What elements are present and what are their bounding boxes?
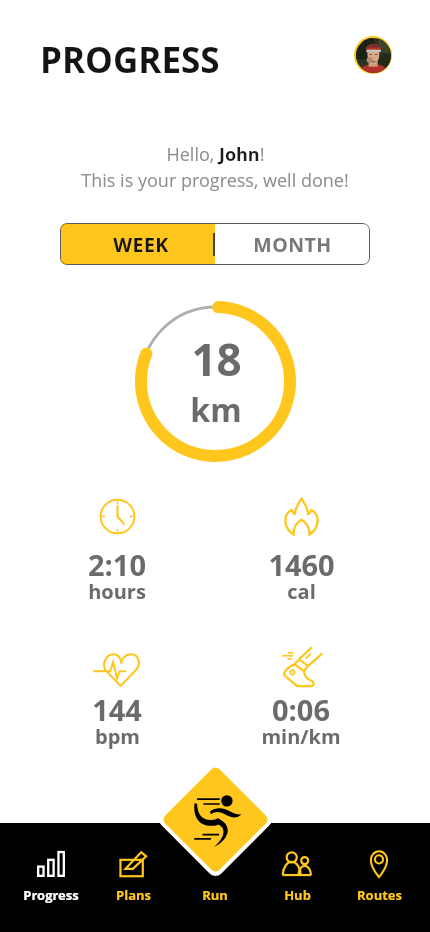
button[interactable]: Profile bbox=[354, 36, 392, 74]
button[interactable]: Routes bbox=[338, 850, 420, 904]
staticText: Routes bbox=[357, 886, 402, 904]
button[interactable]: Run bbox=[174, 850, 256, 904]
staticText: bpm bbox=[95, 723, 140, 750]
staticText: Progress bbox=[23, 886, 79, 904]
staticText: Plans bbox=[116, 886, 151, 904]
button[interactable]: Hub bbox=[256, 850, 338, 904]
button[interactable]: Start run bbox=[161, 765, 270, 874]
button[interactable]: 0:06 bbox=[209, 648, 393, 756]
staticText: 2:10 bbox=[88, 545, 146, 584]
staticText: 144 bbox=[92, 690, 142, 729]
staticText: Hello, John! bbox=[166, 142, 265, 167]
staticText: This is your progress, well done! bbox=[81, 168, 349, 193]
button[interactable]: 1460 bbox=[209, 496, 393, 611]
staticText: WEEK bbox=[113, 231, 169, 258]
staticText: cal bbox=[287, 578, 316, 605]
button[interactable]: 144 bbox=[25, 648, 209, 756]
staticText: PROGRESS bbox=[40, 36, 220, 84]
button[interactable]: Plans bbox=[92, 850, 174, 904]
button[interactable]: MONTH bbox=[215, 223, 370, 265]
staticText: Hub bbox=[284, 886, 311, 904]
button[interactable]: WEEK bbox=[60, 223, 215, 265]
staticText: min/km bbox=[261, 723, 341, 750]
staticText: Run bbox=[202, 886, 228, 904]
staticText: MONTH bbox=[253, 231, 332, 258]
staticText: 18 bbox=[191, 329, 242, 389]
staticText: hours bbox=[88, 578, 146, 605]
staticText: 1460 bbox=[268, 545, 335, 584]
button[interactable]: Progress bbox=[10, 850, 92, 904]
staticText: 0:06 bbox=[272, 690, 330, 729]
button[interactable]: 2:10 bbox=[25, 496, 209, 611]
staticText: km bbox=[190, 388, 242, 432]
